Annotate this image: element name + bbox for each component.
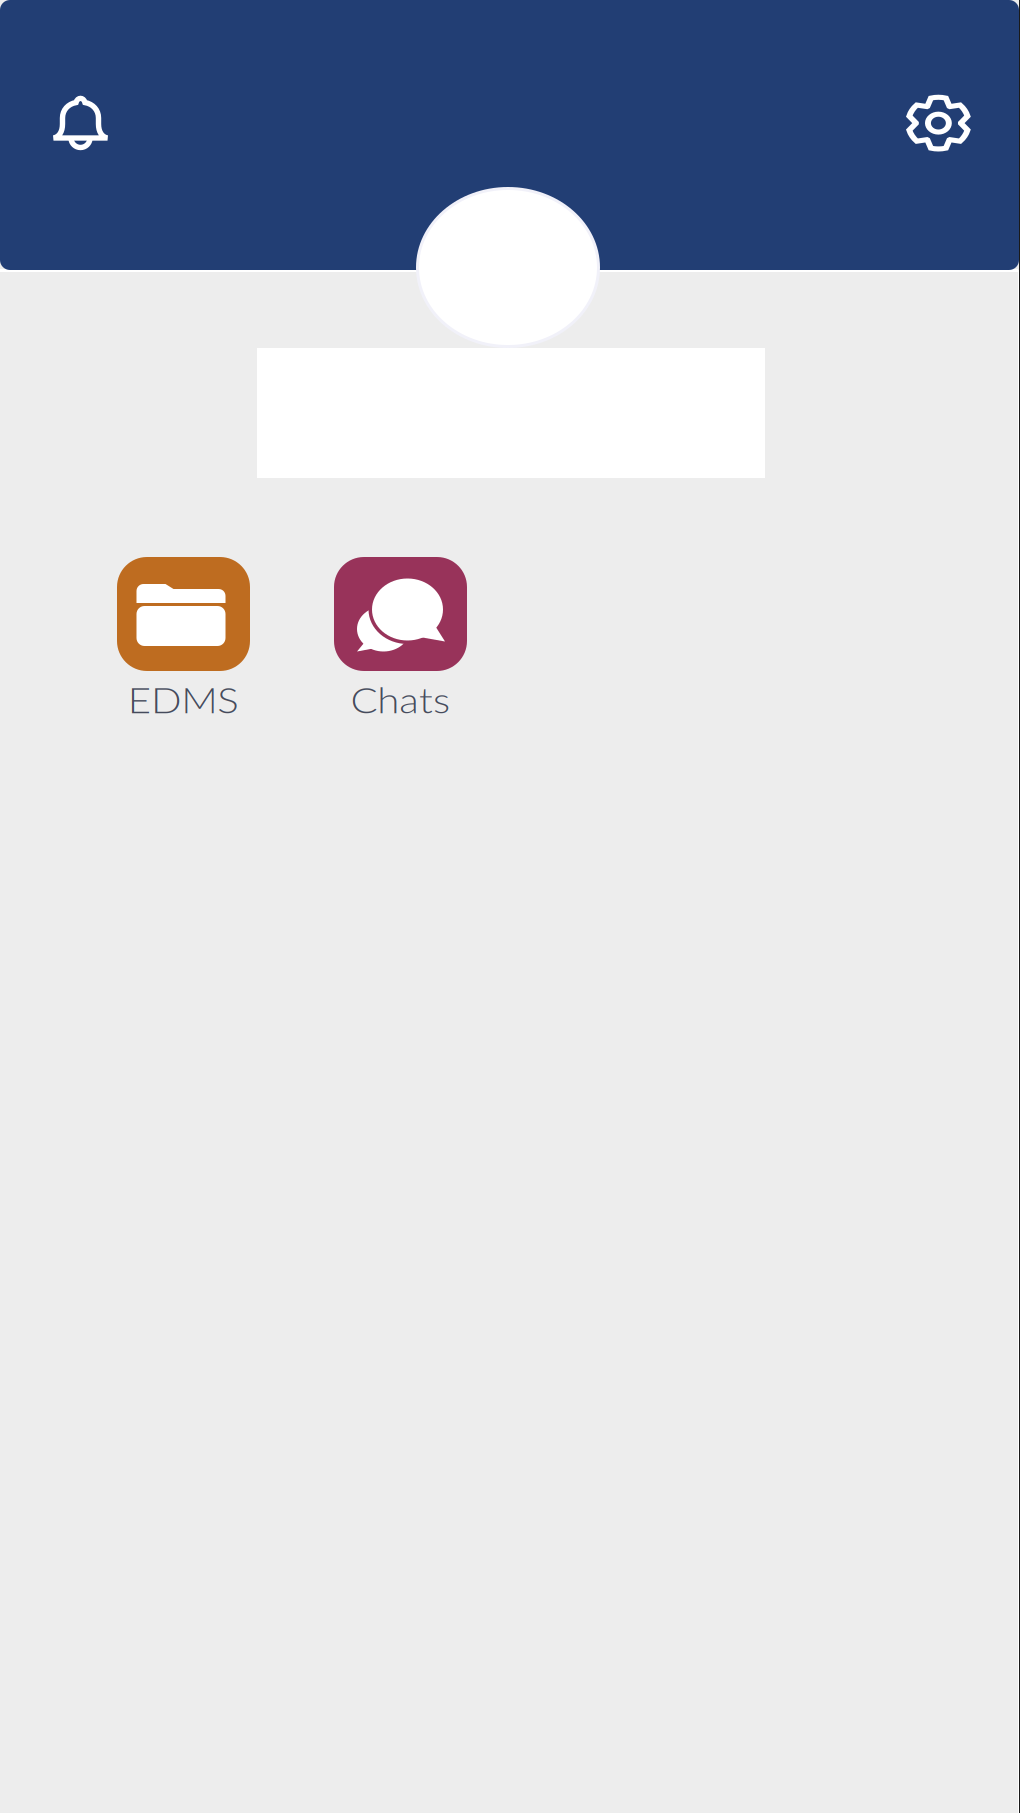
button[interactable]: Chats xyxy=(334,557,467,721)
button[interactable]: EDMS xyxy=(117,557,250,721)
button[interactable]: Notifications xyxy=(0,94,112,154)
button[interactable]: Settings xyxy=(907,93,1018,155)
staticText: Chats xyxy=(357,679,443,721)
staticText: EDMS xyxy=(135,679,231,721)
